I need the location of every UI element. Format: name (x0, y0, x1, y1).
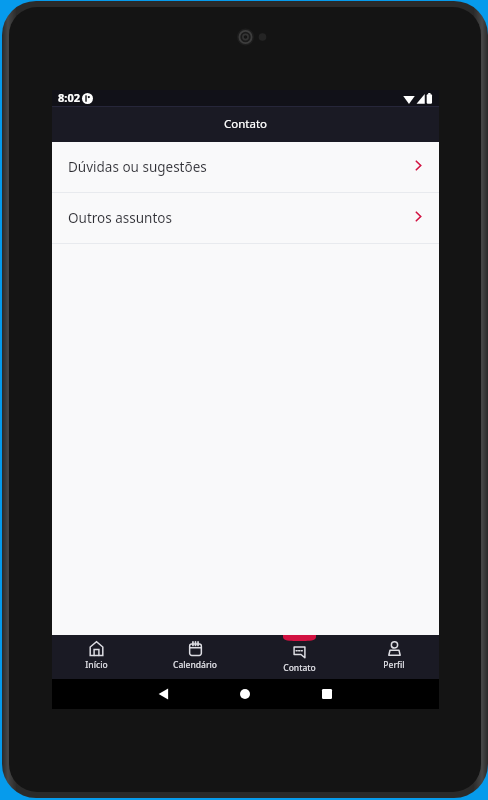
button[interactable]: Recent apps (310, 679, 344, 709)
staticText: Contato (283, 662, 316, 674)
staticText: Início (85, 659, 108, 671)
button[interactable]: Back (146, 679, 180, 709)
button[interactable]: Dúvidas ou sugestões (52, 142, 439, 192)
staticText: Perfil (383, 659, 405, 671)
staticText: Dúvidas ou sugestões (68, 158, 207, 176)
staticText: 8:02 (58, 90, 80, 105)
staticText: Contato (224, 116, 268, 132)
button[interactable]: Início (53, 635, 139, 679)
button[interactable]: Perfil (351, 635, 437, 679)
button[interactable]: Outros assuntos (52, 193, 439, 243)
button[interactable]: Home (228, 679, 262, 709)
button[interactable]: Calendário (152, 635, 238, 679)
staticText: Outros assuntos (68, 209, 172, 227)
staticText: Calendário (173, 659, 217, 671)
button[interactable]: Contato (256, 635, 342, 679)
